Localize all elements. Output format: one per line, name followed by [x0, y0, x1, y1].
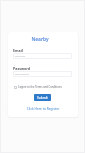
staticText: Nearby — [31, 36, 49, 43]
button[interactable]: Submit — [34, 94, 51, 101]
staticText: Submit — [37, 96, 48, 100]
button[interactable]: I agree to the Terms and Conditions — [14, 85, 62, 89]
button[interactable]: Click Here to Register — [8, 107, 78, 111]
button[interactable]: Enter Password — [13, 71, 72, 77]
staticText: Enter Password — [15, 73, 29, 76]
staticText: I agree to the Terms and Conditions — [18, 85, 62, 89]
staticText: Enter Email — [15, 55, 26, 58]
staticText: Password — [13, 66, 31, 71]
staticText: Email — [13, 48, 23, 53]
button[interactable]: Enter Email — [13, 53, 72, 59]
